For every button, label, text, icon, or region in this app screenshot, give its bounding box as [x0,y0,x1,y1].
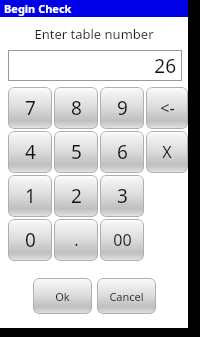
button[interactable]: 4 [8,131,52,173]
button[interactable]: 2 [54,175,98,217]
staticText: 7 [25,95,36,121]
staticText: Cancel [109,289,144,304]
staticText: 26 [154,53,176,79]
staticText: 2 [71,183,82,209]
button[interactable]: 6 [100,131,144,173]
staticText: 5 [71,139,82,165]
button[interactable]: 26 [8,50,182,81]
button[interactable]: 7 [8,87,52,129]
staticText: 1 [25,183,36,209]
button[interactable]: <- [146,87,188,129]
button[interactable]: X [146,131,188,173]
button[interactable]: 8 [54,87,98,129]
staticText: 9 [117,95,128,121]
button[interactable]: 1 [8,175,52,217]
staticText: X [162,141,172,163]
staticText: . [74,229,79,251]
staticText: Ok [55,289,70,304]
staticText: Begin Check [4,1,72,16]
button[interactable]: 3 [100,175,144,217]
button[interactable]: . [54,219,98,261]
button[interactable]: 0 [8,219,52,261]
staticText: 0 [25,227,36,253]
button[interactable]: 00 [100,219,144,261]
staticText: 8 [71,95,82,121]
staticText: 3 [117,183,128,209]
button[interactable]: Cancel [97,278,156,314]
staticText: <- [160,97,175,119]
button[interactable]: 9 [100,87,144,129]
button[interactable]: 5 [54,131,98,173]
staticText: 00 [113,229,132,251]
button[interactable]: Ok [33,278,92,314]
staticText: Enter table number [34,25,154,43]
staticText: 6 [117,139,128,165]
staticText: 4 [25,139,36,165]
